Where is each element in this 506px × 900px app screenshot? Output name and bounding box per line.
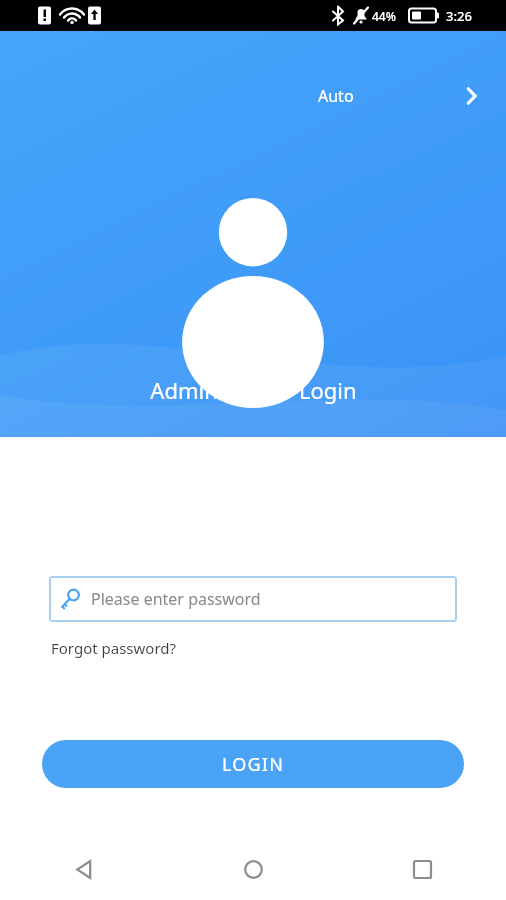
staticText: Please enter password [91, 588, 261, 610]
staticText: 44% [372, 8, 396, 24]
button[interactable]: Recent apps [394, 841, 450, 897]
button[interactable]: Password [49, 576, 457, 622]
staticText: Administrator Login [150, 375, 357, 405]
button[interactable]: LOGIN [42, 740, 464, 788]
other: Password [57, 586, 83, 612]
staticText: 3:26 [446, 7, 472, 25]
other: Next [462, 87, 480, 105]
button[interactable]: Auto [308, 79, 490, 113]
staticText: Forgot password? [51, 638, 177, 658]
button[interactable]: Back [56, 841, 112, 897]
button[interactable]: Home [225, 841, 281, 897]
staticText: Auto [318, 85, 354, 107]
staticText: LOGIN [222, 752, 285, 777]
button[interactable]: Forgot password? [51, 636, 177, 660]
